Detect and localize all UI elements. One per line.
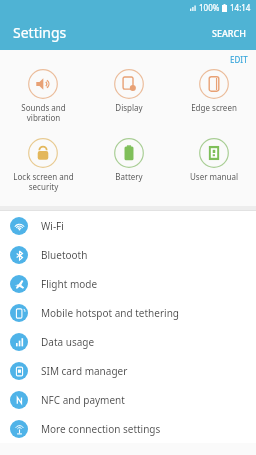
staticText: Battery bbox=[115, 171, 143, 182]
button[interactable]: User manual bbox=[171, 136, 256, 184]
staticText: Display bbox=[115, 102, 143, 113]
button[interactable]: Edge screen bbox=[171, 67, 256, 115]
staticText: User manual bbox=[190, 171, 238, 182]
staticText: Lock screen and security bbox=[13, 171, 74, 192]
button[interactable]: More connection settings bbox=[0, 414, 256, 443]
staticText: Sounds and vibration bbox=[21, 102, 66, 123]
button[interactable]: SIM card manager bbox=[0, 356, 256, 385]
button[interactable]: Data usage bbox=[0, 327, 256, 356]
staticText: NFC and payment bbox=[41, 393, 125, 407]
staticText: Bluetooth bbox=[41, 248, 88, 262]
button[interactable]: EDIT bbox=[222, 51, 256, 67]
button[interactable]: Battery bbox=[86, 136, 171, 184]
button[interactable]: Wi-Fi bbox=[0, 211, 256, 240]
button[interactable]: NFC and payment bbox=[0, 385, 256, 414]
staticText: SEARCH bbox=[212, 27, 246, 39]
staticText: SIM card manager bbox=[41, 364, 128, 378]
staticText: Settings bbox=[13, 23, 67, 42]
button[interactable]: Lock screen and security bbox=[0, 136, 86, 194]
button[interactable]: Bluetooth bbox=[0, 240, 256, 269]
staticText: Wi-Fi bbox=[41, 219, 64, 233]
staticText: 100% bbox=[199, 2, 220, 13]
staticText: Mobile hotspot and tethering bbox=[41, 306, 179, 320]
button[interactable]: Flight mode bbox=[0, 269, 256, 298]
staticText: Edge screen bbox=[191, 102, 237, 113]
staticText: 14:14 bbox=[230, 2, 251, 13]
staticText: Flight mode bbox=[41, 277, 98, 291]
staticText: More connection settings bbox=[41, 422, 161, 436]
button[interactable]: Sounds and vibration bbox=[0, 67, 86, 125]
staticText: Data usage bbox=[41, 335, 95, 349]
staticText: EDIT bbox=[230, 54, 248, 64]
button[interactable]: Display bbox=[86, 67, 171, 115]
button[interactable]: SEARCH bbox=[202, 19, 256, 47]
button[interactable]: Mobile hotspot and tethering bbox=[0, 298, 256, 327]
